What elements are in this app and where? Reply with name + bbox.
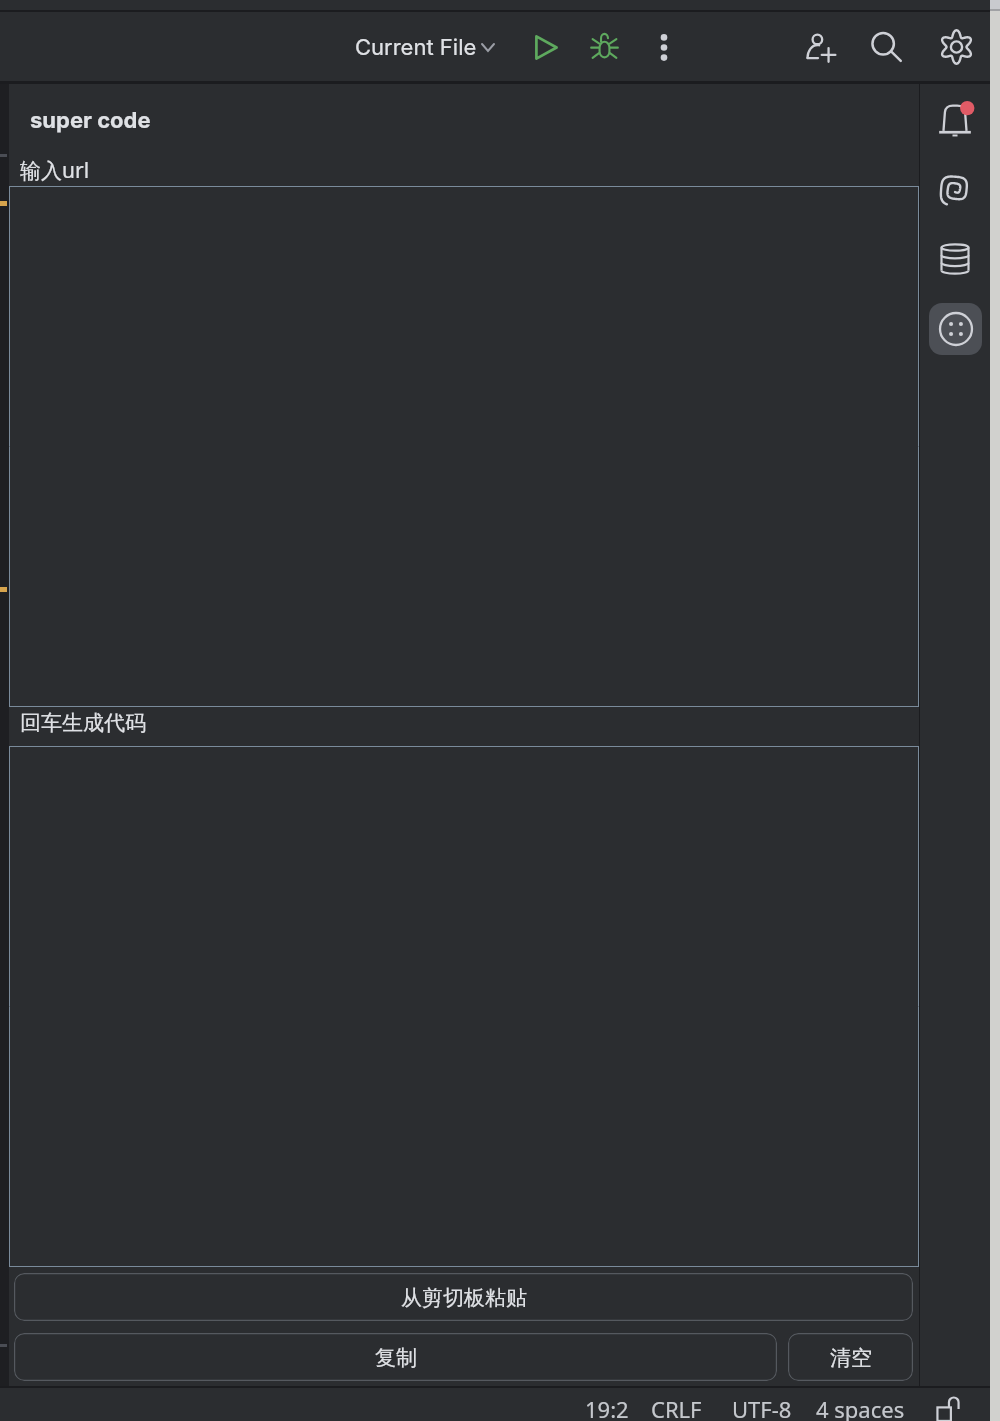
staticText: 4 spaces [816, 1394, 905, 1421]
button[interactable]: Settings [930, 21, 982, 73]
button[interactable] [9, 186, 919, 707]
button[interactable]: 从剪切板粘贴 [14, 1273, 913, 1321]
staticText: UTF-8 [732, 1394, 792, 1421]
staticText: CRLF [651, 1394, 702, 1421]
staticText: 复制 [375, 1345, 417, 1371]
button[interactable]: Current File [345, 21, 505, 73]
button[interactable]: 19:2 [581, 1394, 633, 1421]
button[interactable]: Run [525, 21, 567, 73]
button[interactable]: More options [646, 21, 682, 73]
button[interactable]: 4 spaces [812, 1394, 909, 1421]
staticText: Current File [355, 34, 477, 61]
button[interactable]: Super code plugin [929, 303, 982, 355]
button[interactable]: Read-only toggle [927, 1395, 969, 1421]
staticText: 回车生成代码 [20, 710, 146, 736]
button[interactable]: Search [861, 21, 913, 73]
button[interactable]: Add user [794, 21, 846, 73]
button[interactable]: Database [929, 233, 981, 285]
button[interactable] [9, 746, 919, 1267]
button[interactable]: UTF-8 [728, 1394, 796, 1421]
staticText: 从剪切板粘贴 [401, 1285, 527, 1311]
staticText: 输入url [20, 156, 90, 185]
button[interactable]: Notifications [929, 94, 981, 146]
staticText: super code [30, 107, 151, 134]
button[interactable]: AI Assistant [929, 163, 981, 215]
button[interactable]: Debug [583, 19, 625, 71]
button[interactable]: 复制 [14, 1333, 777, 1381]
button[interactable]: 清空 [788, 1333, 913, 1381]
button[interactable]: CRLF [647, 1394, 706, 1421]
staticText: 清空 [830, 1345, 872, 1371]
staticText: 19:2 [585, 1394, 629, 1421]
